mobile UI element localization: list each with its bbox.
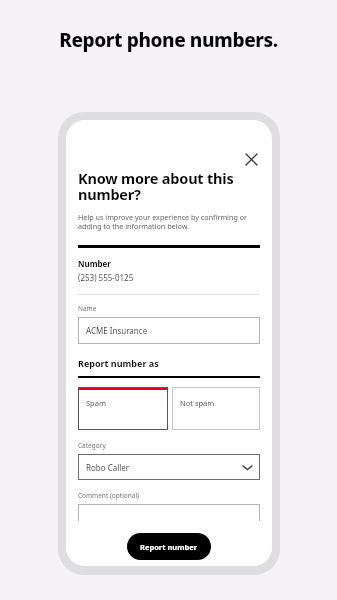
staticText: Comment (optional) [78,491,140,500]
staticText: Robo Caller [86,462,130,473]
staticText: Report number [140,542,198,552]
staticText: Number [78,258,111,269]
button[interactable]: Spam [78,387,168,430]
staticText: Spam [86,398,106,408]
staticText: Help us improve your experience by confi… [78,212,248,232]
staticText: Not spam [180,398,215,408]
staticText: Name [78,304,97,313]
button[interactable]: Close [238,146,264,172]
staticText: Report phone numbers. [59,27,278,53]
staticText: Report number as [78,357,159,369]
button[interactable]: Robo Caller [78,454,260,480]
button[interactable]: Not spam [172,387,260,430]
staticText: Category [78,441,106,450]
button[interactable]: ACME Insurance [78,317,260,344]
staticText: (253) 555-0125 [78,272,134,283]
staticText: Know more about this number? [78,168,234,205]
staticText: ACME Insurance [86,325,148,336]
button[interactable]: Report number [127,533,211,560]
